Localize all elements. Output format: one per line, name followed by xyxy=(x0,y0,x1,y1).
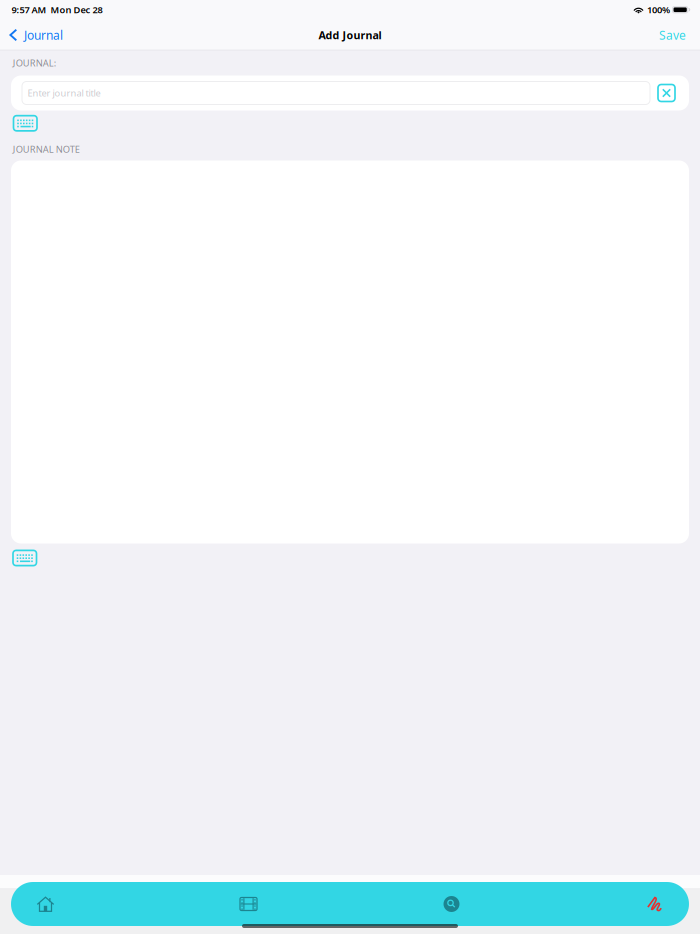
staticText: Add Journal xyxy=(318,28,381,42)
button[interactable]: Keyboard xyxy=(0,543,700,565)
button[interactable]: Home xyxy=(22,882,69,926)
button[interactable]: Keyboard xyxy=(0,110,700,131)
button[interactable]: Clear xyxy=(658,84,675,101)
button[interactable]: Search xyxy=(428,882,475,926)
staticText: Mon Dec 28 xyxy=(50,4,102,16)
staticText: JOURNAL: xyxy=(13,57,57,69)
button[interactable]: Draw xyxy=(631,882,678,926)
staticText: 9:57 AM xyxy=(11,4,46,16)
staticText: Save xyxy=(659,27,686,43)
staticText: Enter journal title xyxy=(27,87,100,99)
button[interactable]: Media xyxy=(225,882,272,926)
button[interactable]: Save xyxy=(647,19,700,50)
staticText: JOURNAL NOTE xyxy=(13,143,80,155)
staticText: 100% xyxy=(647,4,670,16)
button[interactable]: Journal xyxy=(0,19,71,50)
staticText: Journal xyxy=(24,27,63,43)
